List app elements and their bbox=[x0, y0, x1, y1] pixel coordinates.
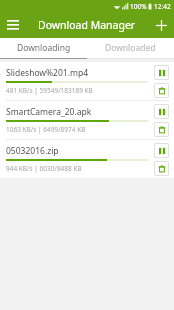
button[interactable]: Add download bbox=[148, 12, 174, 38]
button[interactable]: Delete bbox=[154, 122, 169, 137]
button[interactable]: Menu bbox=[0, 12, 26, 38]
button[interactable]: Downloaded bbox=[87, 38, 174, 58]
staticText: SmartCamera_20.apk bbox=[6, 106, 92, 118]
staticText: 481 KB/s | 59549/183189 KB bbox=[6, 86, 93, 95]
button[interactable]: SmartCamera_20.apk bbox=[0, 101, 174, 139]
staticText: Downloaded bbox=[105, 42, 156, 54]
button[interactable]: Downloading bbox=[0, 38, 87, 58]
button[interactable]: Pause bbox=[154, 143, 169, 158]
button[interactable]: Delete bbox=[154, 83, 169, 98]
staticText: Downloading bbox=[17, 42, 71, 54]
staticText: 1063 KB/s | 6499/8974 KB bbox=[6, 125, 86, 134]
staticText: 944 KB/s | 6030/8488 KB bbox=[6, 164, 82, 173]
button[interactable]: Delete bbox=[154, 161, 169, 176]
staticText: Slideshow%201.mp4 bbox=[6, 67, 89, 79]
staticText: Download Manager bbox=[38, 18, 136, 32]
button[interactable]: Slideshow%201.mp4 bbox=[0, 62, 174, 100]
button[interactable]: Pause bbox=[154, 104, 169, 119]
button[interactable]: 05032016.zip bbox=[0, 140, 174, 178]
staticText: 100% bbox=[130, 2, 147, 11]
button[interactable]: Pause bbox=[154, 65, 169, 80]
staticText: 12:42 bbox=[154, 2, 171, 11]
staticText: 05032016.zip bbox=[6, 145, 59, 157]
